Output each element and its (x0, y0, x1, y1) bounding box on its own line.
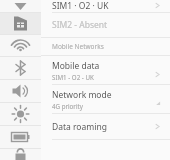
button[interactable]: Security (0, 149, 41, 160)
staticText: Network mode (52, 89, 112, 101)
button[interactable]: Data roaming (41, 114, 170, 139)
staticText: Mobile data (52, 60, 100, 72)
button[interactable]: SIM1 · O2 · UK (41, 0, 170, 12)
button[interactable]: Mobile data (41, 56, 170, 84)
button[interactable]: Wi-Fi (0, 35, 41, 56)
button[interactable]: Data usage (0, 0, 41, 12)
button[interactable]: SIM cards (0, 13, 41, 34)
button[interactable]: Brightness (0, 103, 41, 125)
staticText: SIM1 - O2 - UK (52, 73, 94, 81)
button[interactable]: Sound (0, 80, 41, 102)
button[interactable]: Network mode (41, 85, 170, 113)
staticText: 4G priority (52, 102, 83, 110)
staticText: Mobile Networks (52, 42, 104, 51)
button[interactable]: Bluetooth (0, 57, 41, 79)
staticText: SIM1 · O2 · UK (52, 0, 154, 11)
staticText: Data roaming (52, 121, 154, 133)
button[interactable]: Battery (0, 126, 41, 148)
staticText: SIM2 - Absent (52, 19, 108, 31)
